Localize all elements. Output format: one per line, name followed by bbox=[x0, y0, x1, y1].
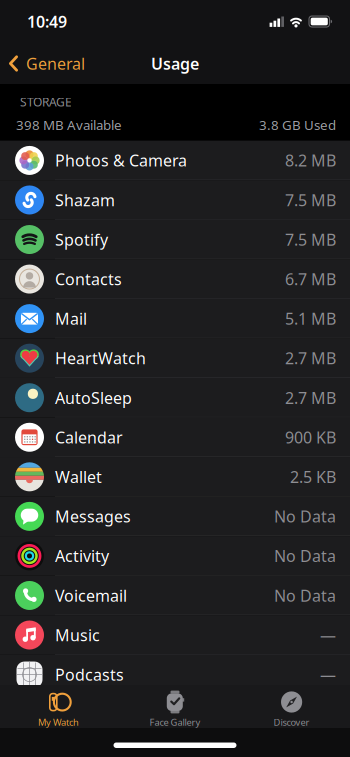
staticText: 900 KB bbox=[285, 427, 336, 448]
staticText: Discover bbox=[274, 716, 310, 728]
staticText: Wallet bbox=[55, 466, 102, 487]
staticText: 3.8 GB Used bbox=[259, 116, 336, 134]
staticText: Face Gallery bbox=[149, 716, 200, 728]
staticText: Music bbox=[55, 624, 100, 646]
staticText: Activity bbox=[55, 545, 109, 566]
staticText: 6.7 MB bbox=[285, 268, 336, 290]
staticText: 8.2 MB bbox=[285, 150, 336, 171]
staticText: Photos & Camera bbox=[55, 150, 187, 171]
button[interactable]: Discover bbox=[233, 685, 350, 728]
staticText: Spotify bbox=[55, 229, 108, 250]
staticText: Shazam bbox=[55, 189, 115, 210]
staticText: Contacts bbox=[55, 268, 122, 290]
staticText: 398 MB Available bbox=[16, 116, 122, 134]
staticText: 7.5 MB bbox=[285, 229, 336, 250]
staticText: AutoSleep bbox=[55, 387, 132, 408]
staticText: 2.5 KB bbox=[290, 466, 336, 487]
button[interactable]: Back to General bbox=[0, 53, 85, 74]
staticText: HeartWatch bbox=[55, 347, 146, 369]
staticText: 2.7 MB bbox=[285, 347, 336, 369]
staticText: 10:49 bbox=[27, 11, 67, 32]
staticText: Mail bbox=[55, 308, 87, 329]
staticText: No Data bbox=[274, 585, 336, 606]
button[interactable]: My Watch bbox=[0, 685, 117, 728]
staticText: 2.7 MB bbox=[285, 387, 336, 408]
staticText: General bbox=[26, 53, 85, 74]
staticText: Calendar bbox=[55, 427, 123, 448]
button[interactable]: Face Gallery bbox=[117, 685, 233, 728]
staticText: My Watch bbox=[38, 716, 79, 728]
staticText: Messages bbox=[55, 506, 131, 527]
staticText: No Data bbox=[274, 545, 336, 566]
staticText: — bbox=[320, 624, 336, 646]
staticText: Usage bbox=[151, 53, 199, 74]
staticText: No Data bbox=[274, 506, 336, 527]
staticText: — bbox=[320, 664, 336, 685]
staticText: 7.5 MB bbox=[285, 189, 336, 210]
staticText: Voicemail bbox=[55, 585, 127, 606]
staticText: 5.1 MB bbox=[285, 308, 336, 329]
staticText: STORAGE bbox=[20, 94, 72, 110]
staticText: Podcasts bbox=[55, 664, 124, 685]
